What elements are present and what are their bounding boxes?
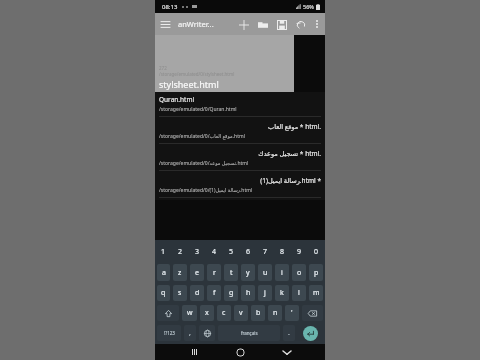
button[interactable]: 9 [291, 242, 307, 261]
button[interactable]: Recent apps [186, 344, 202, 360]
button[interactable]: , [184, 325, 196, 341]
staticText: a [162, 268, 166, 278]
button[interactable]: ' [285, 305, 299, 321]
button[interactable]: u [258, 264, 272, 281]
button[interactable]: d [190, 285, 204, 301]
staticText: e [195, 268, 199, 278]
staticText: w [187, 308, 193, 318]
staticText: u [263, 268, 268, 278]
button[interactable]: p [309, 264, 323, 281]
button[interactable]: Back [279, 344, 295, 360]
staticText: 3 [195, 247, 200, 257]
button[interactable]: g [224, 285, 238, 301]
button[interactable]: n [268, 305, 282, 321]
staticText: /storage/emulated/0/Quran.html [159, 106, 321, 113]
button[interactable]: Shift [157, 305, 179, 321]
button[interactable]: français [218, 325, 280, 341]
button[interactable]: b [251, 305, 265, 321]
button[interactable]: s [173, 285, 187, 301]
staticText: f [213, 288, 216, 298]
staticText: s [178, 288, 182, 298]
button[interactable]: h [241, 285, 255, 301]
button[interactable]: 2 [172, 242, 188, 261]
button[interactable]: c [217, 305, 231, 321]
button[interactable]: Quran.html [155, 92, 325, 119]
staticText: 2 [178, 247, 183, 257]
button[interactable]: 272 [155, 35, 294, 92]
staticText: r [213, 268, 216, 278]
staticText: 6 [246, 247, 251, 257]
button[interactable]: !?123 [157, 325, 181, 341]
button[interactable]: z [173, 264, 187, 281]
staticText: !?123 [164, 330, 175, 336]
staticText: q [161, 288, 166, 298]
button[interactable]: 0 [308, 242, 324, 261]
button[interactable]: k [275, 285, 289, 301]
button[interactable]: f [207, 285, 221, 301]
staticText: l [298, 288, 300, 298]
button[interactable]: 3 [189, 242, 205, 261]
button[interactable]: anWriter... [178, 19, 214, 29]
staticText: 1 [161, 247, 166, 257]
button[interactable]: 5 [223, 242, 239, 261]
button[interactable]: 8 [274, 242, 290, 261]
staticText: , [189, 328, 191, 338]
button[interactable]: r [207, 264, 221, 281]
button[interactable]: a [157, 264, 170, 281]
button[interactable]: رسالة ايميل(1).html * [155, 173, 325, 200]
button[interactable]: Home [232, 344, 248, 360]
button[interactable]: موقع العاب * html. [155, 119, 325, 146]
button[interactable]: New file [234, 15, 253, 34]
button[interactable]: Enter [297, 324, 324, 342]
staticText: d [195, 288, 200, 298]
button[interactable]: 7 [257, 242, 273, 261]
button[interactable]: l [292, 285, 306, 301]
staticText: /storage/emulated/0/تسجيل موعد.html [159, 160, 321, 167]
button[interactable]: j [258, 285, 272, 301]
staticText: 4 [212, 247, 217, 257]
button[interactable]: x [200, 305, 214, 321]
button[interactable]: Change keyboard [199, 325, 215, 341]
staticText: /storage/emulated/0/رسالة ايميل(1).html [159, 187, 321, 194]
staticText: 56% [303, 3, 314, 10]
staticText: رسالة ايميل(1).html * [159, 176, 321, 185]
button[interactable]: Navigation menu [155, 14, 175, 34]
button[interactable]: 6 [240, 242, 256, 261]
staticText: x [205, 308, 209, 318]
button[interactable]: m [309, 285, 323, 301]
button[interactable]: t [224, 264, 238, 281]
staticText: 272 [159, 65, 167, 71]
staticText: stylsheet.html [159, 78, 219, 90]
staticText: c [222, 308, 226, 318]
button[interactable]: . [283, 325, 295, 341]
staticText: ' [291, 308, 293, 318]
staticText: t [230, 268, 233, 278]
button[interactable]: Save [272, 15, 291, 34]
button[interactable]: o [292, 264, 306, 281]
staticText: Quran.html [159, 95, 321, 104]
button[interactable]: 1 [156, 242, 171, 261]
button[interactable]: More options [310, 17, 324, 31]
button[interactable]: 4 [206, 242, 222, 261]
staticText: b [256, 308, 261, 318]
button[interactable]: y [241, 264, 255, 281]
button[interactable]: w [182, 305, 197, 321]
button[interactable]: تسجيل موعدك * html. [155, 146, 325, 173]
staticText: 7 [263, 247, 268, 257]
button[interactable]: Open folder [253, 15, 272, 34]
staticText: o [297, 268, 302, 278]
staticText: موقع العاب * html. [159, 122, 321, 131]
button[interactable]: i [275, 264, 289, 281]
staticText: k [280, 288, 284, 298]
staticText: 0 [314, 247, 319, 257]
staticText: 8 [280, 247, 285, 257]
staticText: 9 [297, 247, 302, 257]
staticText: /storage/emulated/0/stylsheet.html [159, 71, 235, 77]
button[interactable]: e [190, 264, 204, 281]
button[interactable]: q [157, 285, 170, 301]
button[interactable]: Backspace [302, 305, 323, 321]
button[interactable]: v [234, 305, 248, 321]
staticText: j [264, 288, 266, 298]
button[interactable]: Undo [291, 15, 310, 34]
staticText: français [241, 330, 258, 336]
